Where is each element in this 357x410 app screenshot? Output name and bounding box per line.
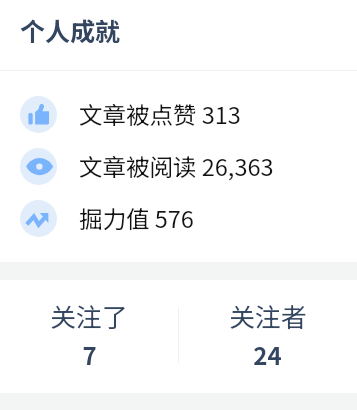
staticText: 24 <box>253 337 282 372</box>
staticText: 掘力值 576 <box>79 201 194 235</box>
staticText: 个人成就 <box>20 12 121 48</box>
staticText: 7 <box>82 337 97 372</box>
button[interactable]: Power value <box>0 192 357 244</box>
other: Views <box>20 148 57 185</box>
staticText: 关注者 <box>229 297 307 334</box>
button[interactable]: 关注者 <box>178 280 357 393</box>
other: Power value <box>20 200 57 237</box>
staticText: 文章被点赞 313 <box>79 97 241 131</box>
other: Likes <box>20 96 57 133</box>
staticText: 文章被阅读 26,363 <box>79 149 274 183</box>
button[interactable]: 个人成就 <box>0 0 357 70</box>
staticText: 关注了 <box>50 297 128 334</box>
button[interactable]: Likes <box>0 88 357 140</box>
button[interactable]: 关注了 <box>0 280 178 393</box>
button[interactable]: Views <box>0 140 357 192</box>
